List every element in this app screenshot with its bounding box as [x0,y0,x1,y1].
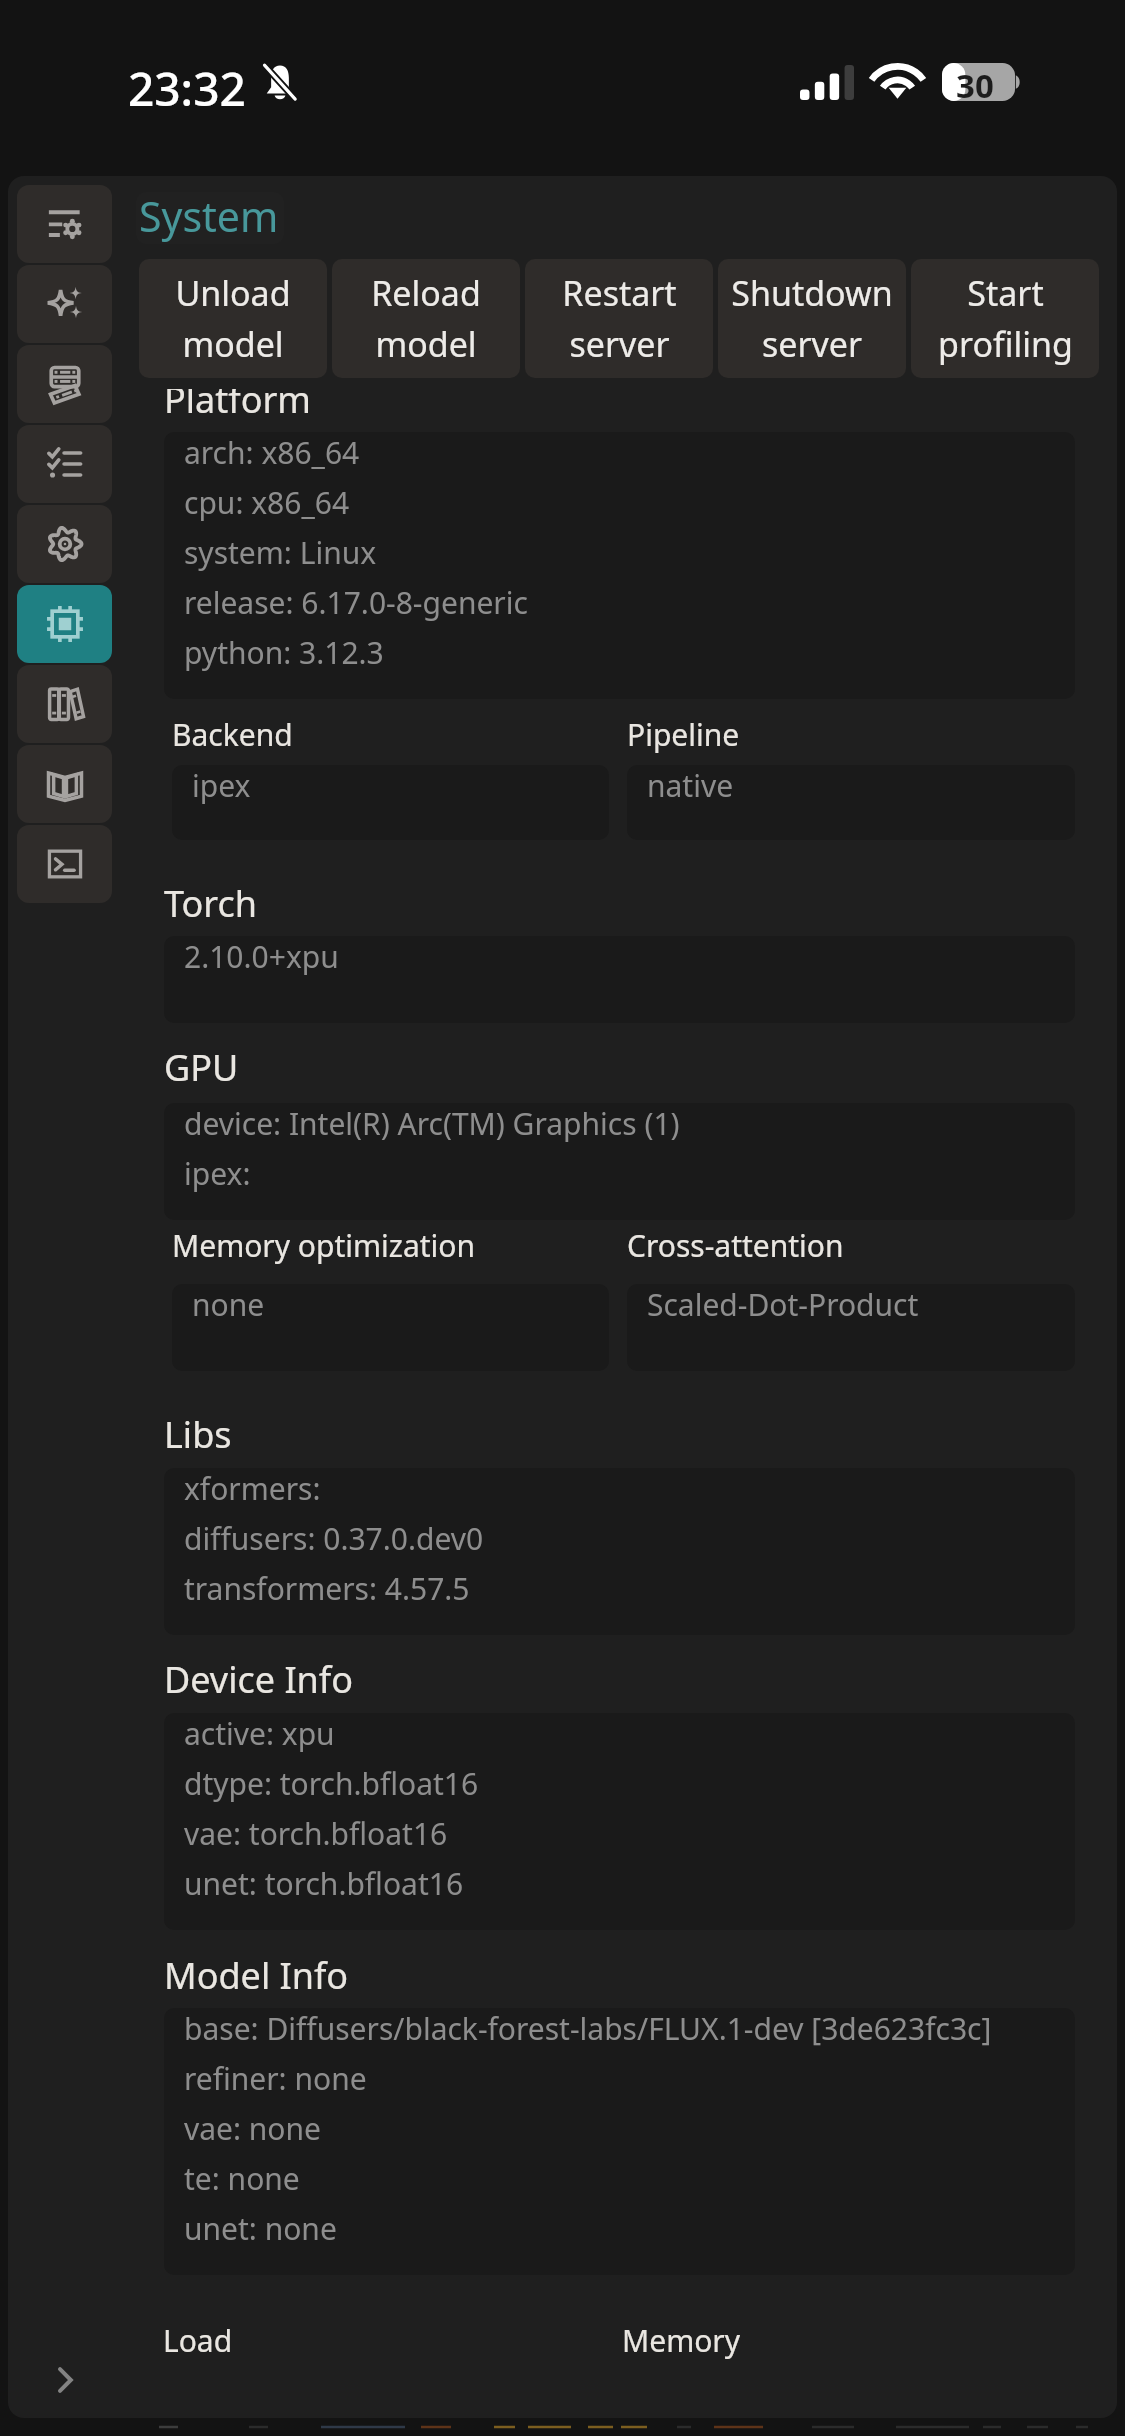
staticText: 2.10.0+xpu [184,936,339,977]
button[interactable]: Console [17,825,112,903]
staticText: Cross-attention [627,1225,844,1266]
staticText: Torch [164,879,257,928]
staticText: device: Intel(R) Arc(TM) Graphics (1) ip… [184,1103,680,1194]
staticText: Model Info [164,1951,349,2000]
staticText: ipex [192,765,251,806]
staticText: 23:32 [128,57,246,120]
staticText: xformers: diffusers: 0.37.0.dev0 transfo… [184,1468,484,1609]
staticText: native [647,765,734,806]
staticText: Load [163,2320,233,2361]
button[interactable]: Process queue [17,425,112,503]
button[interactable]: Expand sidebar [17,2340,112,2418]
staticText: Unload model [175,270,291,367]
staticText: Restart server [562,270,677,367]
button[interactable]: Start profiling [911,259,1099,378]
staticText: arch: x86_64 cpu: x86_64 system: Linux r… [184,432,528,673]
staticText: active: xpu dtype: torch.bfloat16 vae: t… [184,1713,479,1904]
button[interactable]: Reload model [332,259,520,378]
staticText: Pipeline [627,714,740,755]
button[interactable]: Unload model [139,259,327,378]
button[interactable]: Text generation settings [17,185,112,263]
staticText: Backend [172,714,293,755]
staticText: none [192,1284,265,1325]
button[interactable]: Restart server [525,259,713,378]
button[interactable]: Extensions [17,665,112,743]
staticText: 30 [956,63,994,101]
button[interactable]: Shutdown server [718,259,906,378]
button[interactable]: Models [17,345,112,423]
staticText: base: Diffusers/black-forest-labs/FLUX.1… [184,2008,992,2249]
button[interactable]: Text to image [17,265,112,343]
staticText: Start profiling [938,270,1073,367]
staticText: Reload model [371,270,481,367]
button[interactable]: Settings [17,505,112,583]
staticText: Shutdown server [731,270,893,367]
staticText: Platform [164,389,311,424]
staticText: Memory [622,2320,741,2361]
button[interactable]: System [139,188,279,244]
staticText: Memory optimization [172,1225,475,1266]
button[interactable]: Documentation [17,745,112,823]
staticText: GPU [164,1043,239,1092]
button[interactable]: System info [17,585,112,663]
staticText: Libs [164,1410,232,1459]
staticText: Scaled-Dot-Product [647,1284,919,1325]
staticText: Device Info [164,1655,354,1704]
